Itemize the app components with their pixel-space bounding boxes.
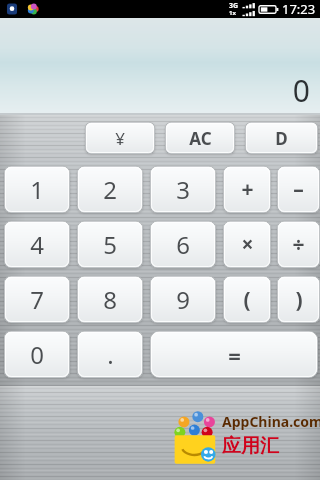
staticText: AppChina.com bbox=[222, 412, 320, 431]
button[interactable]: 9 bbox=[150, 276, 216, 323]
staticText: 1x bbox=[229, 9, 236, 17]
staticText: 0 bbox=[292, 70, 310, 111]
button[interactable]: ¥ bbox=[85, 122, 155, 154]
button[interactable]: 0 bbox=[4, 331, 70, 378]
staticText: 3G bbox=[229, 1, 239, 11]
staticText: 7 bbox=[30, 283, 44, 316]
button[interactable]: Open parenthesis bbox=[223, 276, 271, 323]
staticText: ÷ bbox=[292, 230, 305, 259]
staticText: + bbox=[241, 175, 254, 204]
staticText: . bbox=[107, 338, 114, 371]
staticText: 9 bbox=[176, 283, 190, 316]
button[interactable]: AC bbox=[165, 122, 235, 154]
button[interactable]: 1 bbox=[4, 166, 70, 213]
button[interactable]: 8 bbox=[77, 276, 143, 323]
button[interactable]: Close parenthesis bbox=[277, 276, 320, 323]
staticText: 1 bbox=[30, 173, 44, 206]
button[interactable]: . bbox=[77, 331, 143, 378]
staticText: – bbox=[293, 175, 304, 204]
button[interactable]: 5 bbox=[77, 221, 143, 268]
button[interactable]: 6 bbox=[150, 221, 216, 268]
button[interactable]: 2 bbox=[77, 166, 143, 213]
staticText: ) bbox=[295, 285, 303, 314]
button[interactable]: 7 bbox=[4, 276, 70, 323]
staticText: 4 bbox=[30, 228, 44, 261]
staticText: × bbox=[241, 230, 254, 259]
staticText: 应用汇 bbox=[222, 434, 279, 458]
button[interactable]: Equals bbox=[150, 331, 318, 378]
button[interactable]: Divide bbox=[277, 221, 320, 268]
staticText: AC bbox=[189, 127, 212, 150]
staticText: ( bbox=[243, 285, 251, 314]
staticText: 8 bbox=[103, 283, 117, 316]
button[interactable]: Multiply bbox=[223, 221, 271, 268]
staticText: 3 bbox=[176, 173, 190, 206]
staticText: = bbox=[228, 340, 241, 370]
staticText: ¥ bbox=[115, 127, 125, 150]
button[interactable]: Plus bbox=[223, 166, 271, 213]
button[interactable]: 3 bbox=[150, 166, 216, 213]
staticText: 17:23 bbox=[282, 0, 316, 18]
button[interactable]: 4 bbox=[4, 221, 70, 268]
staticText: D bbox=[275, 127, 288, 150]
staticText: 0 bbox=[30, 338, 44, 371]
button[interactable]: D bbox=[245, 122, 318, 154]
staticText: 2 bbox=[103, 173, 117, 206]
staticText: 6 bbox=[176, 228, 190, 261]
button[interactable]: Minus bbox=[277, 166, 320, 213]
staticText: 5 bbox=[103, 228, 117, 261]
